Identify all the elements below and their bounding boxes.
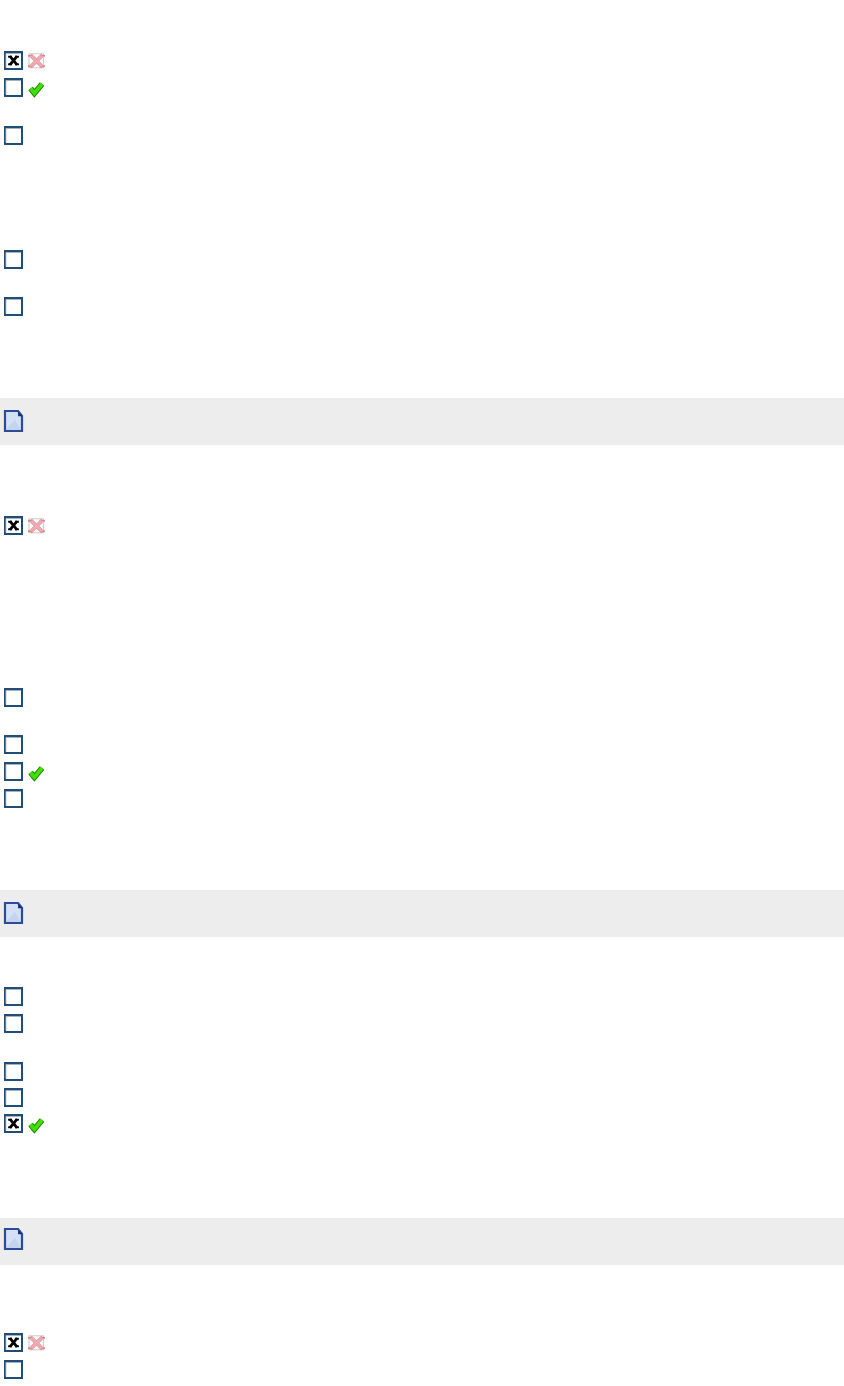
button[interactable]: Unchecked checkbox [4, 688, 23, 707]
button[interactable]: Document [4, 410, 23, 432]
button[interactable]: Unchecked checkbox [4, 762, 23, 781]
button[interactable] [0, 890, 844, 937]
button[interactable]: Unchecked checkbox [4, 1360, 23, 1379]
button[interactable]: Unchecked checkbox [4, 789, 23, 808]
button[interactable]: Document [4, 1228, 23, 1250]
button[interactable]: Unchecked checkbox [4, 1014, 23, 1033]
button[interactable]: Unchecked checkbox [4, 987, 23, 1006]
button[interactable]: Checked checkbox [4, 1333, 23, 1352]
button[interactable]: Broken image [28, 518, 45, 534]
button[interactable]: Unchecked checkbox [4, 1088, 23, 1107]
button[interactable]: Document [4, 902, 23, 924]
button[interactable]: Unchecked checkbox [4, 735, 23, 754]
button[interactable]: Success [28, 765, 44, 780]
button[interactable]: Checked checkbox [4, 516, 23, 535]
button[interactable]: Unchecked checkbox [4, 78, 23, 97]
button[interactable]: Broken image [28, 1335, 45, 1351]
button[interactable]: Success [28, 81, 44, 96]
button[interactable] [0, 1218, 844, 1265]
button[interactable] [0, 398, 844, 445]
button[interactable]: Broken image [28, 53, 45, 69]
button[interactable]: Unchecked checkbox [4, 297, 23, 316]
button[interactable]: Unchecked checkbox [4, 126, 23, 145]
button[interactable]: Unchecked checkbox [4, 250, 23, 269]
button[interactable]: Unchecked checkbox [4, 1062, 23, 1081]
button[interactable]: Checked checkbox [4, 1114, 23, 1133]
button[interactable]: Success [28, 1117, 44, 1132]
button[interactable]: Checked checkbox [4, 51, 23, 70]
